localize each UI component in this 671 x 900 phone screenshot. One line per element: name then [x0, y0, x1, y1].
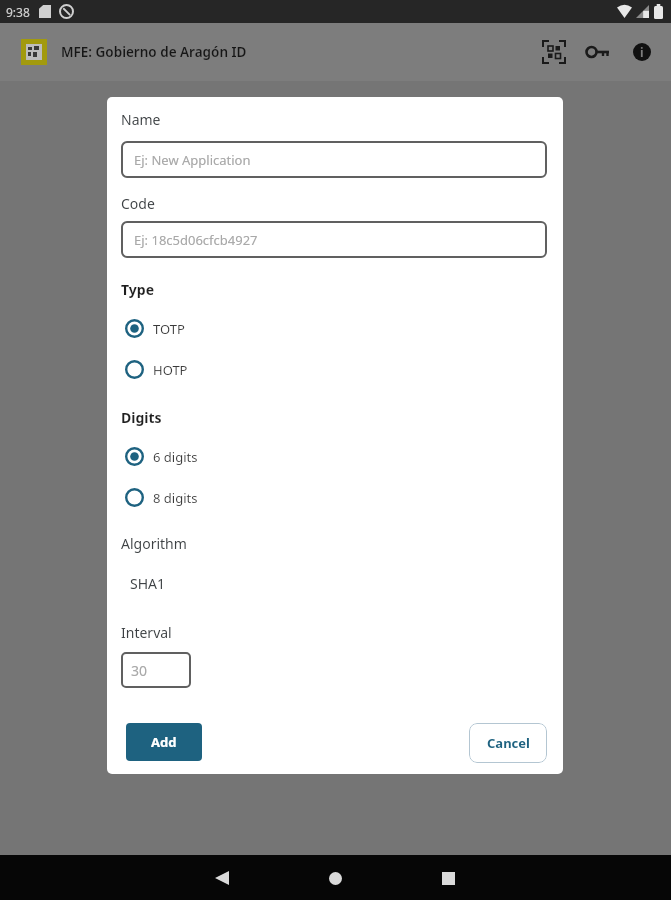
button[interactable]: 6 digits — [121, 447, 198, 466]
staticText: Algorithm — [121, 534, 187, 553]
button[interactable] — [578, 32, 618, 72]
staticText: Type — [121, 280, 154, 299]
button[interactable]: Ej: 18c5d06cfcb4927 — [121, 221, 547, 258]
staticText: 6 digits — [153, 448, 198, 466]
staticText: Digits — [121, 408, 162, 427]
staticText: Add — [151, 733, 177, 751]
staticText: 9:38 — [6, 4, 30, 20]
button[interactable] — [200, 856, 244, 900]
staticText: SHA1 — [130, 574, 166, 593]
staticText: Interval — [121, 623, 172, 642]
button[interactable]: Add — [126, 723, 202, 761]
staticText: Code — [121, 194, 155, 213]
staticText: Cancel — [487, 734, 530, 752]
button[interactable] — [534, 32, 574, 72]
staticText: Ej: 18c5d06cfcb4927 — [134, 231, 258, 249]
staticText: MFE: Gobierno de Aragón ID — [61, 43, 247, 61]
button[interactable]: Ej: New Application — [121, 141, 547, 178]
button[interactable]: TOTP — [121, 319, 185, 338]
staticText: Name — [121, 110, 161, 129]
button[interactable] — [313, 856, 357, 900]
button[interactable]: HOTP — [121, 360, 188, 379]
staticText: i — [640, 44, 644, 60]
button[interactable]: Cancel — [469, 723, 547, 763]
staticText: TOTP — [153, 320, 185, 338]
staticText: HOTP — [153, 361, 188, 379]
staticText: 30 — [131, 661, 148, 680]
staticText: Ej: New Application — [134, 151, 251, 169]
button[interactable]: i — [622, 32, 662, 72]
staticText: 8 digits — [153, 489, 198, 507]
button[interactable]: 30 — [121, 652, 191, 688]
button[interactable]: 8 digits — [121, 488, 198, 507]
button[interactable] — [426, 856, 470, 900]
